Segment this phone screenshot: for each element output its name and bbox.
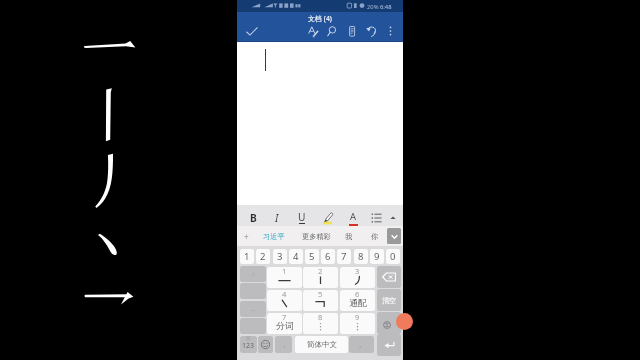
- staticText: 7: [341, 250, 347, 263]
- staticText: 5: [309, 250, 315, 263]
- button[interactable]: Word split: [267, 313, 302, 334]
- button[interactable]: 6: [321, 249, 335, 264]
- staticText: ?: [252, 271, 255, 278]
- button[interactable]: 1: [240, 249, 254, 264]
- button[interactable]: Emoji: [258, 336, 273, 353]
- staticText: 20%: [367, 3, 379, 11]
- button[interactable]: Zhe stroke: [303, 290, 338, 311]
- button[interactable]: Collapse: [383, 205, 403, 226]
- staticText: 8: [318, 313, 323, 322]
- staticText: 7: [282, 313, 287, 322]
- button[interactable]: 我: [340, 226, 358, 246]
- button[interactable]: Reading view: [343, 20, 361, 42]
- button[interactable]: Highlight: [318, 205, 338, 226]
- button[interactable]: Wildcard: [340, 290, 375, 311]
- button[interactable]: More options: [382, 20, 400, 42]
- staticText: 4: [282, 290, 287, 299]
- staticText: —: [250, 306, 256, 313]
- button[interactable]: ，: [275, 336, 292, 353]
- button[interactable]: 习近平: [259, 226, 289, 246]
- staticText: 3: [355, 267, 360, 276]
- staticText: 1: [244, 250, 250, 263]
- staticText: 123: [242, 341, 255, 351]
- staticText: A: [350, 210, 357, 223]
- staticText: 。: [359, 341, 365, 349]
- button[interactable]: 简体中文: [295, 336, 348, 353]
- staticText: I: [275, 211, 279, 225]
- staticText: 8: [358, 250, 364, 263]
- button[interactable]: 更多精彩: [298, 226, 334, 246]
- staticText: U: [298, 210, 306, 224]
- staticText: 符: [246, 336, 251, 342]
- button[interactable]: Bullet list: [367, 205, 387, 226]
- staticText: 更多精彩: [302, 232, 331, 241]
- button[interactable]: Add: [239, 226, 253, 246]
- staticText: 9: [374, 250, 380, 263]
- button[interactable]: Voice input: [396, 313, 413, 330]
- button[interactable]: Numbers: [240, 336, 257, 353]
- button[interactable]: 8: [354, 249, 368, 264]
- button[interactable]: 清空: [377, 289, 401, 311]
- button[interactable]: B: [243, 205, 263, 226]
- button[interactable]: 2: [256, 249, 270, 264]
- staticText: 6:48: [380, 3, 392, 11]
- staticText: 我: [345, 232, 353, 241]
- button[interactable]: Shu stroke: [303, 267, 338, 288]
- button[interactable]: Expand candidates: [387, 228, 401, 244]
- button[interactable]: Undo: [362, 20, 380, 42]
- staticText: 0: [390, 250, 396, 263]
- button[interactable]: Pie stroke: [340, 267, 375, 288]
- staticText: 2: [260, 250, 266, 263]
- button[interactable]: Underline: [292, 205, 312, 226]
- button[interactable]: 9: [370, 249, 384, 264]
- staticText: 1: [282, 267, 287, 276]
- staticText: 2: [318, 267, 323, 276]
- button[interactable]: Switch keyboard: [377, 312, 401, 334]
- staticText: 文档 (4): [308, 14, 332, 23]
- button[interactable]: Separator: [303, 313, 338, 334]
- staticText: 5: [318, 290, 323, 299]
- staticText: 3: [277, 250, 283, 263]
- staticText: 9: [355, 313, 360, 322]
- button[interactable]: Ink: [304, 20, 322, 42]
- staticText: 简体中文: [307, 340, 337, 349]
- staticText: 清空: [382, 296, 396, 305]
- staticText: +: [244, 231, 249, 242]
- button[interactable]: Backspace: [377, 266, 401, 288]
- staticText: 6: [355, 290, 360, 299]
- button[interactable]: 5: [305, 249, 319, 264]
- button[interactable]: 0: [386, 249, 400, 264]
- staticText: 4: [293, 250, 299, 263]
- staticText: 6: [325, 250, 331, 263]
- button[interactable]: I: [267, 205, 287, 226]
- staticText: 通配: [349, 297, 367, 308]
- staticText: 分词: [276, 320, 294, 331]
- button[interactable]: Heng stroke: [267, 267, 302, 288]
- button[interactable]: 3: [273, 249, 287, 264]
- staticText: ，: [281, 341, 287, 349]
- staticText: ‘: [253, 323, 254, 330]
- button[interactable]: Search: [323, 20, 341, 42]
- button[interactable]: Enter: [377, 334, 401, 356]
- button[interactable]: 你: [366, 226, 384, 246]
- button[interactable]: Font colour: [343, 205, 363, 226]
- button[interactable]: Dian stroke: [267, 290, 302, 311]
- button[interactable]: 7: [337, 249, 351, 264]
- staticText: 你: [371, 232, 379, 241]
- button[interactable]: 4: [289, 249, 303, 264]
- button[interactable]: Separator: [340, 313, 375, 334]
- button[interactable]: Done: [240, 21, 264, 41]
- staticText: 习近平: [263, 232, 285, 241]
- staticText: B: [250, 211, 257, 225]
